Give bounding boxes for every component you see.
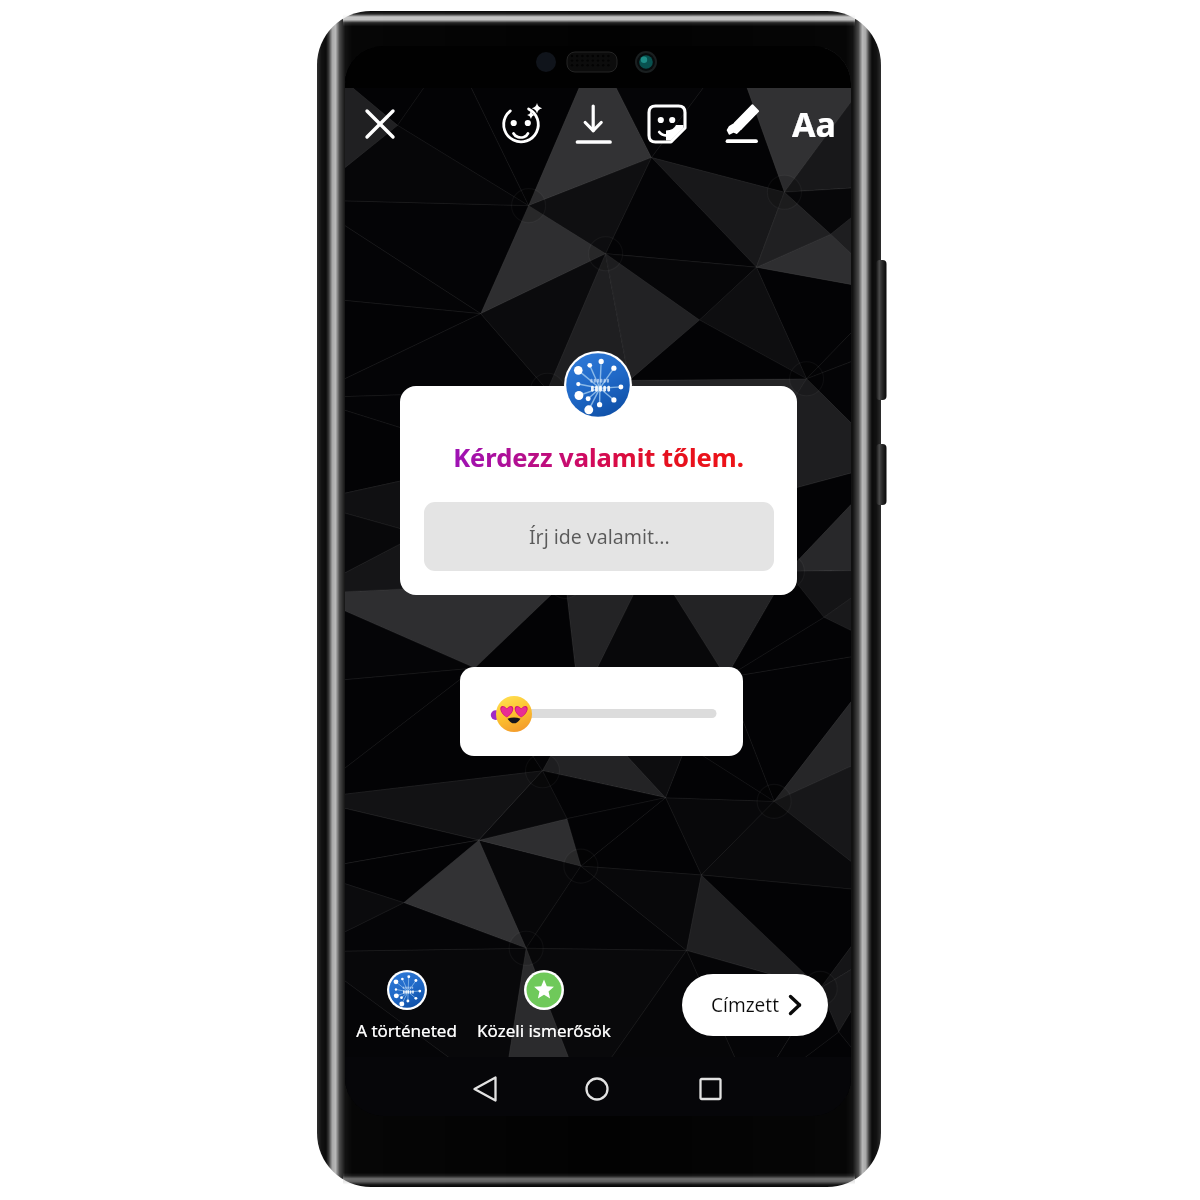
button[interactable]: A történeted (345, 970, 476, 1066)
button[interactable]: Közeli ismerősök (454, 970, 634, 1066)
button[interactable]: Stickers (643, 100, 691, 148)
button[interactable]: Aa (790, 100, 838, 148)
staticText: Aa (792, 101, 836, 147)
staticText: Címzett (711, 992, 780, 1018)
button[interactable]: Draw (716, 100, 764, 148)
button[interactable]: Save (569, 100, 617, 148)
button[interactable]: Close (356, 100, 404, 148)
button[interactable]: Írj ide valamit... (424, 502, 774, 571)
button[interactable]: Face effects (497, 100, 545, 148)
staticText: Közeli ismerősök (477, 1019, 611, 1042)
staticText: Kérdezz valamit tőlem. (400, 440, 797, 480)
staticText: A történeted (356, 1019, 457, 1042)
staticText: Írj ide valamit... (529, 523, 670, 550)
button[interactable] (460, 667, 743, 756)
button[interactable]: Kérdezz valamit tőlem. (400, 386, 797, 595)
button[interactable]: Címzett (682, 974, 828, 1036)
